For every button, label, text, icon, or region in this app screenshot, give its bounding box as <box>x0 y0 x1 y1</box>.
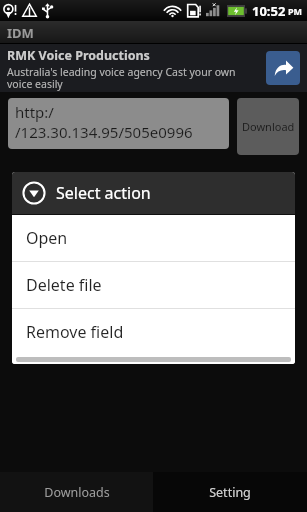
staticText: PM <box>288 5 303 17</box>
staticText: Delete file <box>26 274 102 296</box>
staticText: Select action <box>56 182 151 204</box>
staticText: RMK Voice Productions <box>7 47 150 64</box>
button[interactable]: Setting <box>153 472 307 512</box>
button[interactable]: Open <box>12 215 295 261</box>
staticText: 10:52 <box>252 2 286 20</box>
button[interactable]: Remove field <box>12 309 295 355</box>
staticText: Download <box>242 119 295 134</box>
staticText: Setting <box>209 484 251 501</box>
button[interactable]: Downloads <box>0 472 153 512</box>
staticText: Open <box>26 227 68 249</box>
staticText: Australia's leading voice agency Cast yo… <box>7 65 251 91</box>
button[interactable]: Download <box>237 98 299 155</box>
button[interactable]: RMK Voice Productions <box>0 44 307 92</box>
staticText: IDM <box>7 24 34 42</box>
staticText: Downloads <box>44 484 110 501</box>
button[interactable]: Share <box>266 51 300 85</box>
button[interactable]: http:/ /123.30.134.95/505e0996 <box>8 98 229 149</box>
button[interactable]: Delete file <box>12 262 295 308</box>
staticText: Remove field <box>26 321 124 343</box>
staticText: http:/ /123.30.134.95/505e0996 <box>15 102 193 142</box>
